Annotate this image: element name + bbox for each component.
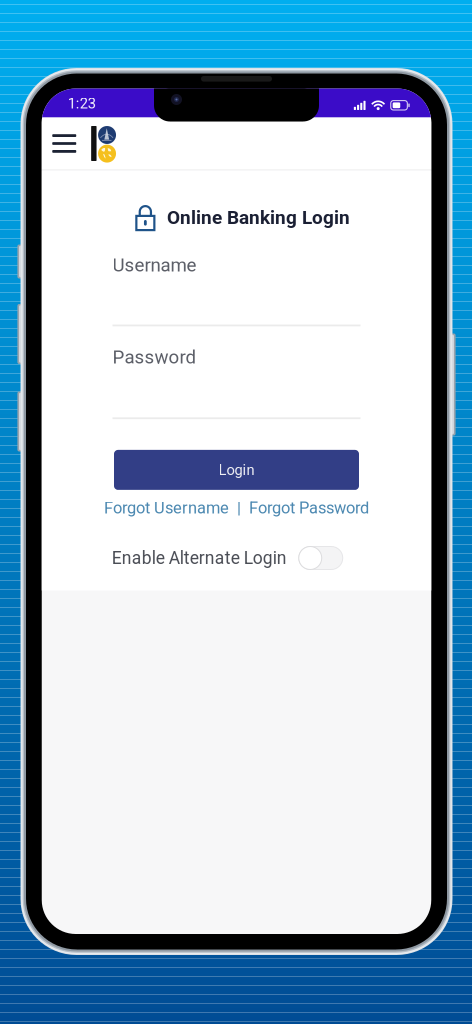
staticText: Username xyxy=(112,254,196,276)
button[interactable]: Login xyxy=(114,450,359,490)
staticText: Login xyxy=(218,461,254,478)
staticText: Password xyxy=(112,346,196,368)
button[interactable]: Forgot Password xyxy=(249,498,369,518)
button[interactable]: Forgot Username xyxy=(104,498,229,518)
button[interactable]: Bank home xyxy=(76,117,131,169)
staticText: Enable Alternate Login xyxy=(112,548,287,568)
button[interactable]: Open menu xyxy=(42,117,76,169)
staticText: | xyxy=(229,498,249,518)
staticText: Forgot Username xyxy=(104,498,229,518)
staticText: Online Banking Login xyxy=(167,206,350,229)
staticText: Forgot Password xyxy=(249,498,369,518)
staticText: 1:23 xyxy=(68,95,96,112)
button[interactable]: Enable Alternate Login xyxy=(112,545,343,571)
